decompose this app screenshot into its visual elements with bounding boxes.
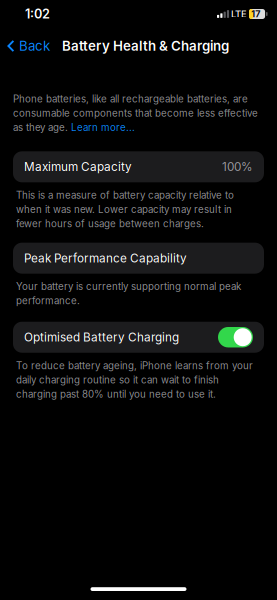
staticText: Maximum Capacity: [24, 160, 132, 174]
staticText: Phone batteries, like all rechargeable b…: [13, 93, 248, 105]
staticText: Back: [19, 38, 50, 54]
staticText: Learn more...: [71, 122, 135, 133]
staticText: 1:02: [25, 6, 50, 22]
staticText: as they age.: [13, 122, 71, 133]
staticText: 17: [251, 8, 260, 19]
staticText: when it was new. Lower capacity may resu…: [16, 204, 232, 215]
staticText: To reduce battery ageing, iPhone learns …: [16, 360, 253, 371]
button[interactable]: Back: [0, 33, 53, 59]
staticText: performance.: [16, 295, 80, 307]
button[interactable]: Optimised Battery Charging: [13, 322, 264, 353]
staticText: Optimised Battery Charging: [24, 330, 179, 344]
staticText: daily charging routine so it can wait to…: [16, 374, 219, 386]
staticText: fewer hours of usage between charges.: [16, 218, 204, 230]
staticText: Battery Health & Charging: [62, 38, 229, 54]
button[interactable]: Optimised Battery Charging: [218, 327, 253, 347]
button[interactable]: Maximum Capacity: [13, 151, 264, 182]
button[interactable]: Peak Performance Capability: [13, 243, 264, 274]
staticText: charging past 80% until you need to use …: [16, 388, 216, 400]
staticText: consumable components that become less e…: [13, 107, 258, 119]
staticText: Your battery is currently supporting nor…: [16, 281, 241, 292]
button[interactable]: Learn more...: [71, 122, 135, 133]
staticText: Peak Performance Capability: [24, 251, 187, 265]
staticText: This is a measure of battery capacity re…: [16, 189, 234, 201]
staticText: LTE: [231, 8, 247, 20]
staticText: 100%: [222, 160, 253, 174]
